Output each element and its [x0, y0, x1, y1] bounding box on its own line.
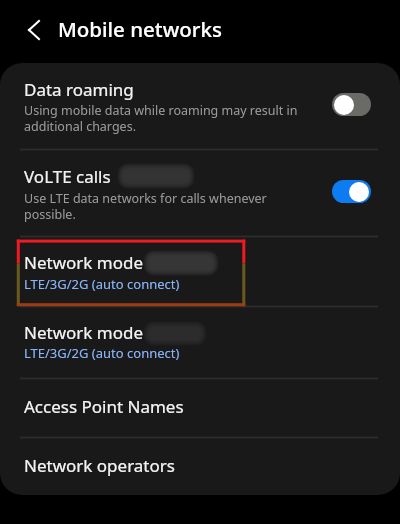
staticText: Network mode [24, 321, 144, 344]
button[interactable]: Data roaming [0, 63, 400, 149]
staticText: Network mode [24, 251, 144, 274]
staticText: LTE/3G/2G (auto connect) [24, 275, 180, 293]
button[interactable]: Turn off [332, 180, 371, 203]
staticText: Using mobile data while roaming may resu… [24, 102, 298, 134]
button[interactable]: Back [9, 5, 59, 55]
staticText: Use LTE data networks for calls whenever… [24, 190, 267, 222]
button[interactable]: Network mode [0, 237, 400, 306]
button[interactable]: Access Point Names [0, 379, 400, 437]
staticText: Data roaming [24, 78, 134, 101]
button[interactable]: VoLTE calls [0, 150, 400, 236]
button[interactable]: Network operators [0, 438, 400, 495]
staticText: LTE/3G/2G (auto connect) [24, 344, 180, 362]
staticText: VoLTE calls [24, 165, 111, 188]
button[interactable]: Network mode [0, 307, 400, 378]
staticText: Network operators [24, 454, 175, 477]
staticText: Mobile networks [58, 15, 222, 43]
staticText: Access Point Names [24, 395, 184, 418]
button[interactable]: Turn on [332, 93, 371, 116]
